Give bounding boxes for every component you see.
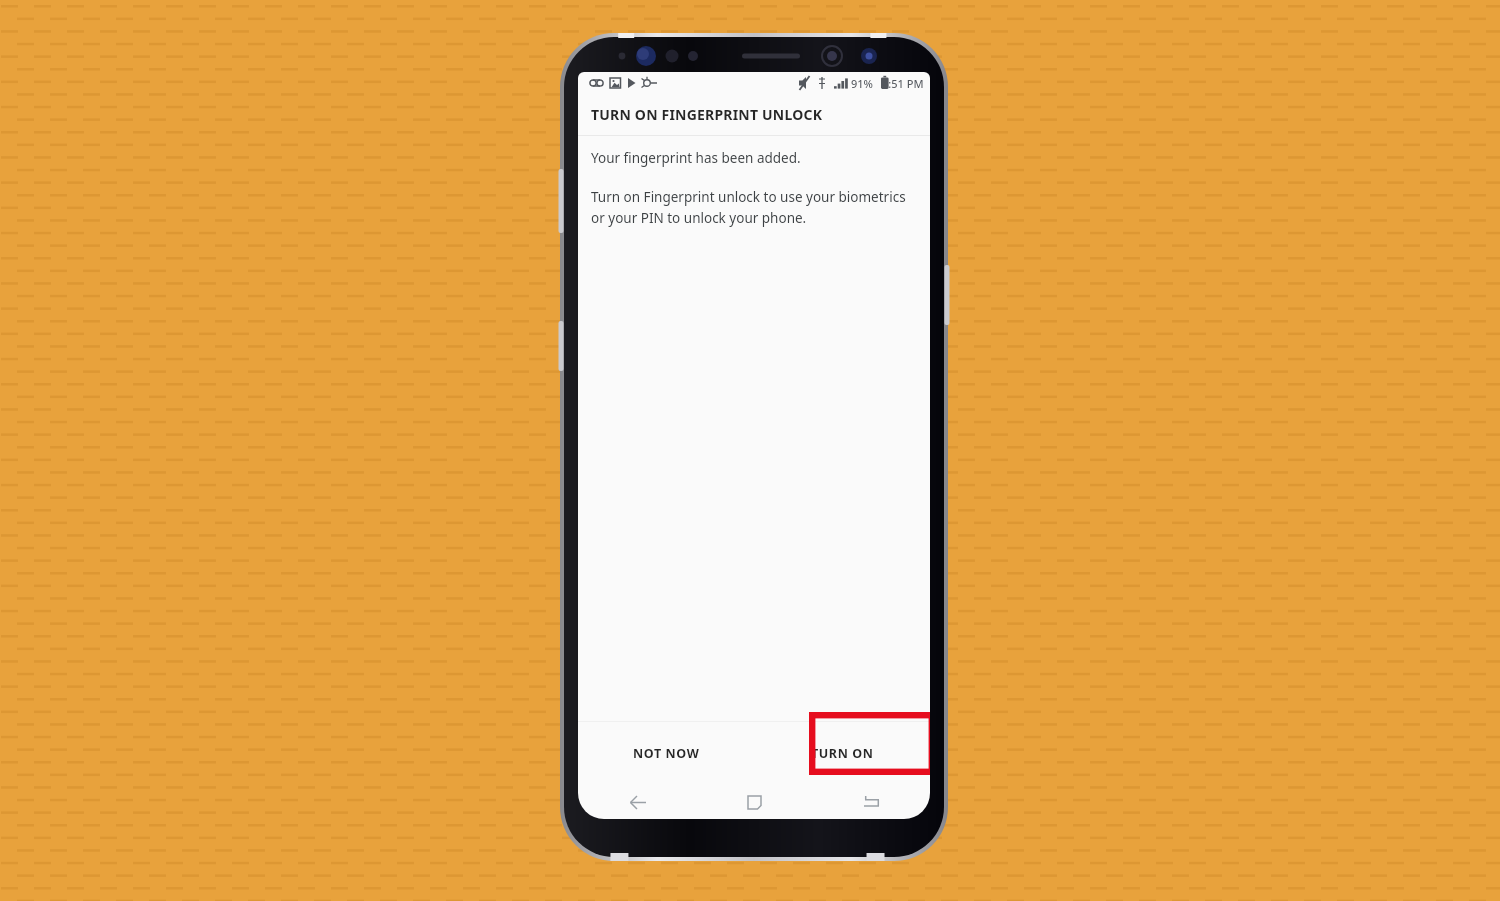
button[interactable]: Recents — [848, 785, 894, 819]
staticText: 91% — [851, 76, 873, 91]
staticText: Turn on Fingerprint unlock to use your b… — [591, 188, 906, 227]
button[interactable]: Home — [731, 785, 777, 819]
staticText: TURN ON — [811, 745, 874, 762]
button[interactable]: Back — [614, 785, 660, 819]
button[interactable]: NOT NOW — [578, 722, 754, 785]
staticText: 4:51 PM — [882, 76, 924, 91]
staticText: TURN ON FINGERPRINT UNLOCK — [591, 105, 823, 124]
staticText: Your fingerprint has been added. — [591, 149, 801, 167]
button[interactable]: TURN ON — [754, 722, 930, 785]
staticText: NOT NOW — [633, 745, 700, 762]
